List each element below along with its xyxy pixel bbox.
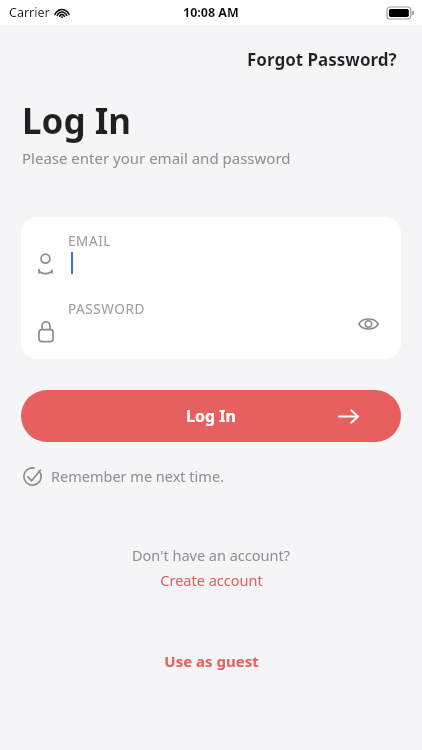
button[interactable]: Show password	[353, 309, 383, 339]
staticText: Log In	[22, 97, 132, 145]
staticText: Please enter your email and password	[22, 148, 291, 168]
button[interactable]: PASSWORD	[21, 288, 401, 359]
button[interactable]: Forgot Password?	[243, 44, 401, 75]
staticText: Don't have an account?	[132, 545, 290, 565]
button[interactable]: EMAIL	[21, 217, 401, 288]
staticText: Log In	[186, 405, 236, 427]
staticText: EMAIL	[68, 232, 112, 250]
button[interactable]: Use as guest	[156, 647, 267, 675]
staticText: Remember me next time.	[51, 466, 224, 486]
button[interactable]: Create account	[154, 568, 269, 592]
button[interactable]: Remember me next time.	[21, 462, 226, 490]
staticText: 10:08 AM	[183, 4, 239, 21]
button[interactable]: Log In	[21, 390, 401, 442]
staticText: Carrier	[9, 4, 50, 21]
staticText: PASSWORD	[68, 300, 145, 318]
